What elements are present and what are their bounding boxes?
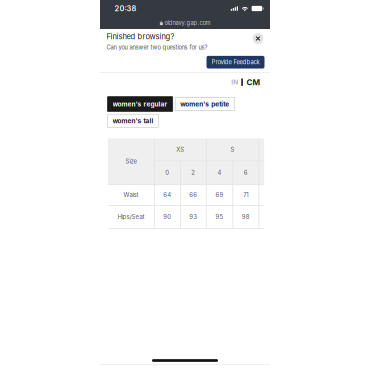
staticText: 0	[165, 169, 169, 176]
staticText: 64	[163, 191, 171, 199]
staticText: 6	[244, 169, 248, 176]
staticText: 20:38	[114, 4, 136, 13]
staticText: 2	[191, 169, 195, 176]
staticText: 93	[189, 213, 197, 221]
button[interactable]: women's regular	[107, 97, 173, 111]
button[interactable]: CM	[243, 75, 264, 89]
staticText: Waist	[123, 191, 138, 199]
button[interactable]: Dismiss	[251, 32, 264, 45]
staticText: Finished browsing?	[106, 32, 174, 41]
staticText: 98	[242, 213, 250, 221]
staticText: 66	[189, 191, 197, 199]
staticText: 71	[243, 191, 248, 199]
staticText: women's tall	[113, 117, 154, 125]
button[interactable]: women's tall	[107, 114, 159, 127]
staticText: 69	[216, 191, 224, 199]
button[interactable]: women's petite	[175, 97, 234, 111]
staticText: CM	[246, 77, 260, 87]
button[interactable]: Provide Feedback	[206, 56, 264, 68]
staticText: oldnavy.gap.com	[164, 19, 210, 26]
staticText: women's regular	[113, 100, 168, 108]
staticText: 95	[216, 213, 224, 221]
staticText: Can you answer two questions for us?	[106, 44, 207, 51]
staticText: Provide Feedback	[211, 59, 259, 66]
staticText: XS	[176, 146, 184, 153]
staticText: women's petite	[180, 100, 229, 108]
staticText: 4	[218, 169, 222, 176]
button[interactable]: IN	[228, 75, 241, 89]
staticText: Size	[125, 158, 136, 165]
staticText: 90	[163, 213, 171, 221]
staticText: S	[231, 146, 235, 153]
staticText: IN	[231, 78, 238, 86]
staticText: Hips/Seat	[117, 213, 144, 221]
